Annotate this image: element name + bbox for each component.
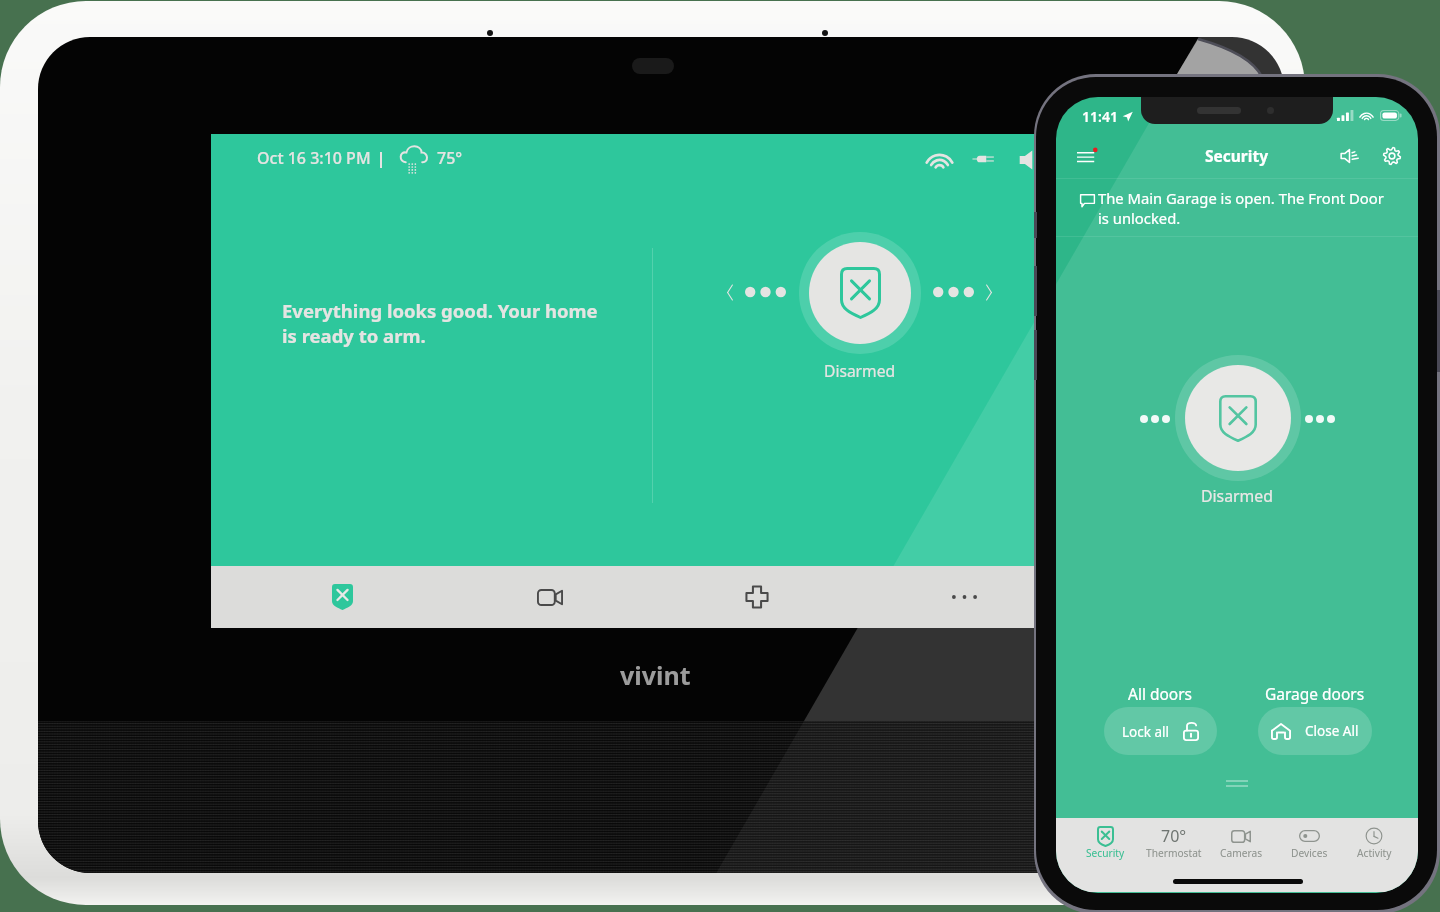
button[interactable]: Cameras xyxy=(1207,818,1275,870)
staticText: Thermostat xyxy=(1146,846,1202,860)
button[interactable]: Devices xyxy=(1275,818,1343,870)
staticText: Disarmed xyxy=(824,360,896,381)
button[interactable]: Cameras xyxy=(446,566,654,628)
staticText: Security xyxy=(1205,145,1269,166)
staticText: vivint xyxy=(620,658,691,692)
staticText: Security xyxy=(1086,846,1125,860)
staticText: Cameras xyxy=(1220,846,1263,860)
staticText: Devices xyxy=(1291,846,1328,860)
staticText: All doors xyxy=(1128,683,1193,704)
button[interactable]: More xyxy=(860,566,1068,628)
staticText: 75° xyxy=(437,147,463,169)
staticText: 11:41 xyxy=(1082,107,1118,126)
button[interactable]: Security xyxy=(1071,818,1139,870)
staticText: Oct 16 3:10 PM xyxy=(257,147,371,169)
staticText: Lock all xyxy=(1122,723,1169,741)
button[interactable]: Disarmed xyxy=(799,232,921,354)
button[interactable]: Settings xyxy=(1375,139,1409,173)
button[interactable]: 70° xyxy=(1140,818,1208,870)
staticText: Garage doors xyxy=(1265,683,1365,704)
staticText: The Main Garage is open. The Front Door … xyxy=(1098,188,1386,229)
staticText: 70° xyxy=(1161,825,1187,847)
staticText: Disarmed xyxy=(1201,485,1273,507)
button[interactable]: Close All xyxy=(1258,707,1372,755)
button[interactable]: Security xyxy=(239,566,446,628)
button[interactable]: Lock all xyxy=(1104,707,1217,755)
button[interactable]: Sound xyxy=(1332,139,1366,173)
button[interactable]: Add xyxy=(654,566,860,628)
button[interactable]: Menu xyxy=(1066,139,1108,173)
staticText: Everything looks good. Your home is read… xyxy=(282,298,598,349)
staticText: Close All xyxy=(1305,722,1359,740)
staticText: Activity xyxy=(1357,846,1392,860)
button[interactable]: Disarmed xyxy=(1185,365,1291,471)
button[interactable]: Activity xyxy=(1340,818,1408,870)
